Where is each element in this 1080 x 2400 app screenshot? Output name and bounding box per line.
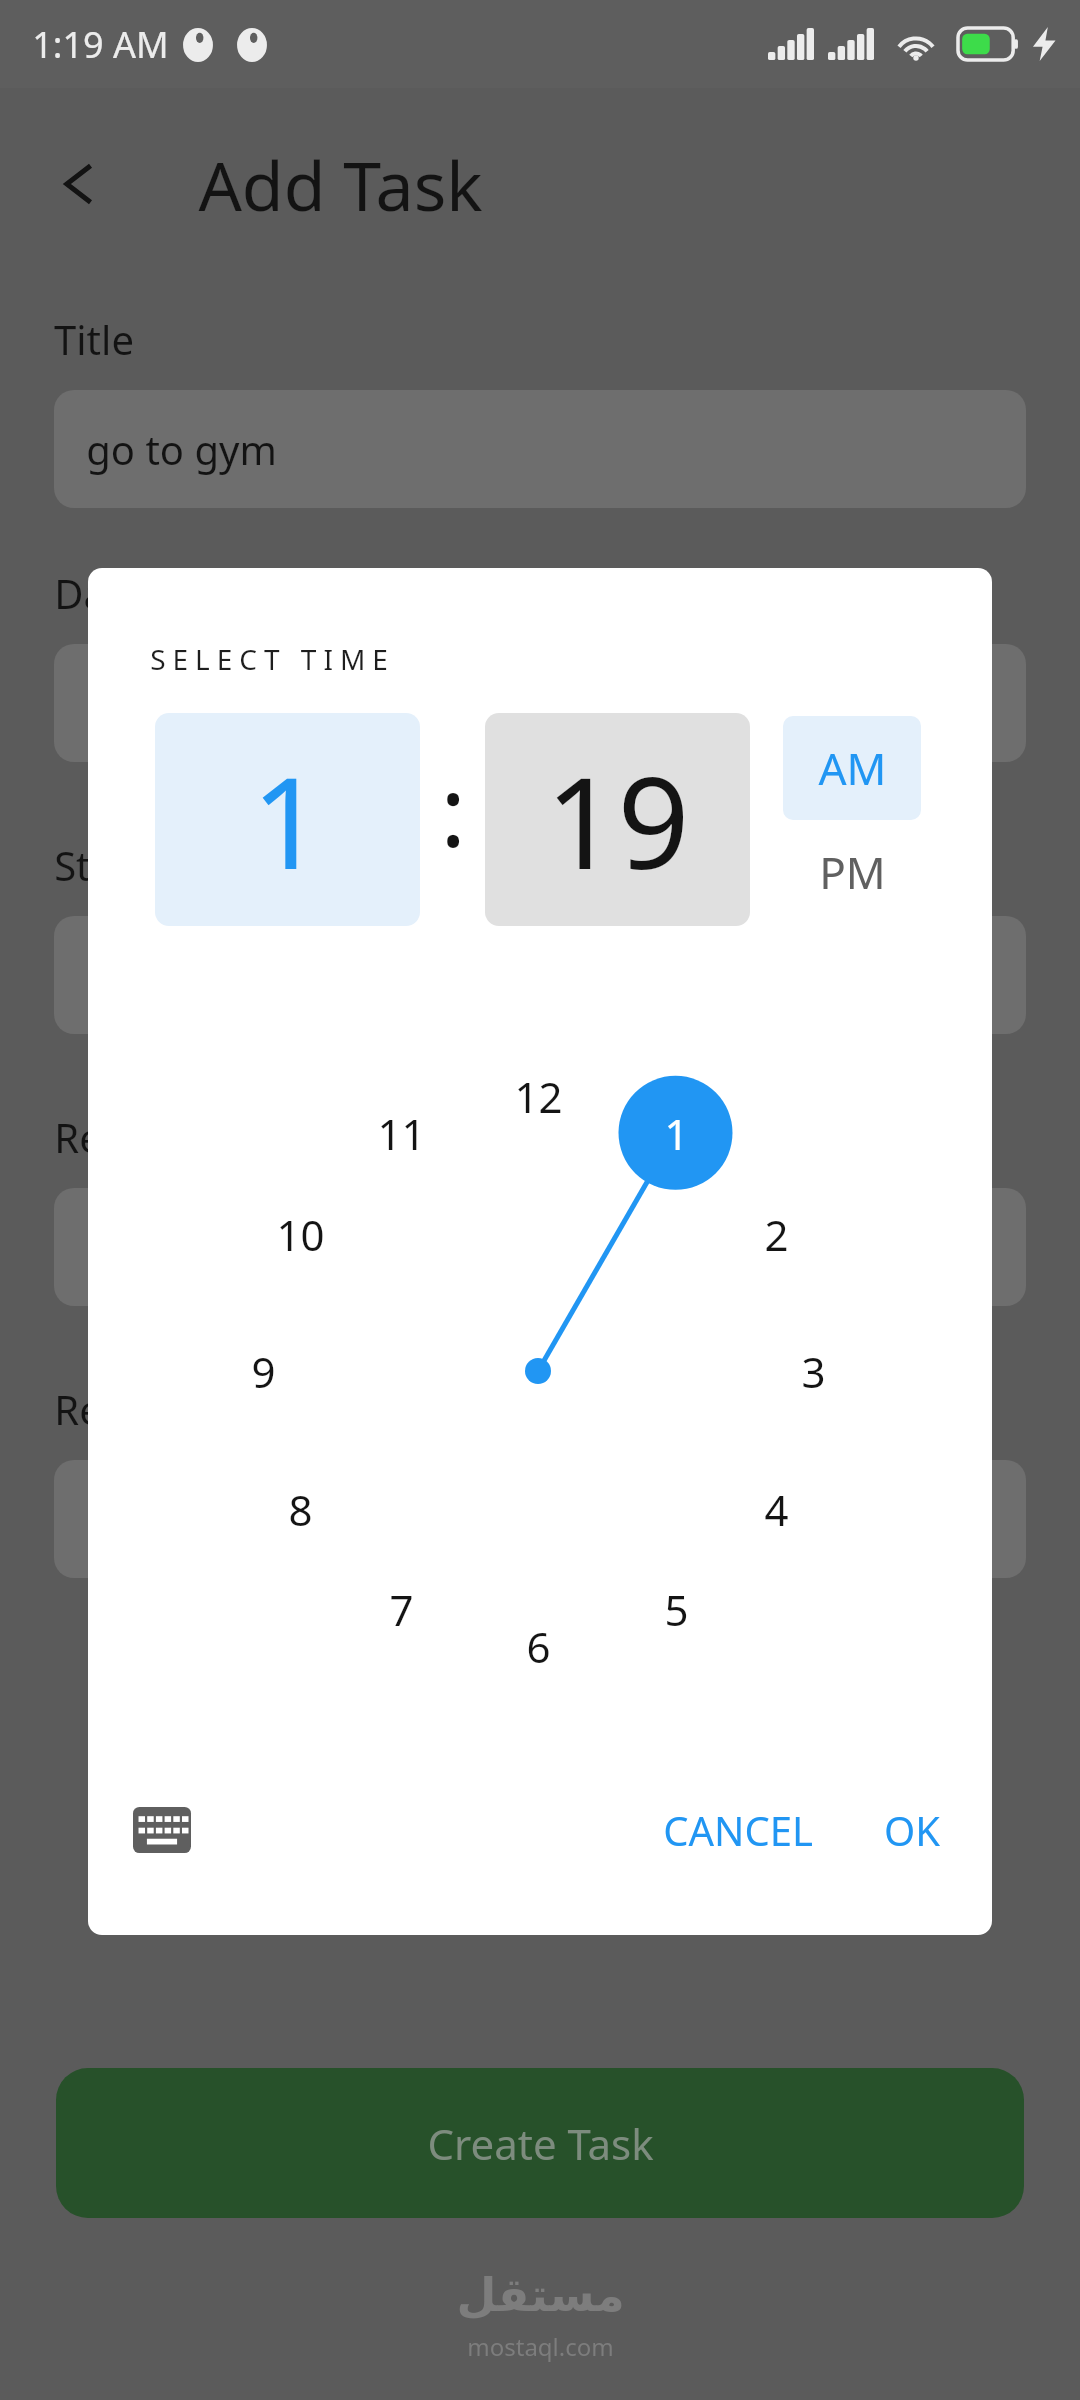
button[interactable]: 5 (626, 1559, 726, 1659)
staticText: PM (819, 842, 886, 902)
staticText: 12 (514, 1068, 563, 1125)
staticText: Create Task (427, 2115, 654, 2172)
staticText: Title (54, 312, 134, 366)
button[interactable]: 19 (485, 713, 750, 926)
staticText: 8 (288, 1481, 313, 1538)
staticText: AM (818, 738, 887, 798)
staticText: 1 (664, 1105, 689, 1162)
button[interactable] (54, 1460, 1026, 1578)
staticText: 10 (276, 1206, 325, 1263)
button[interactable]: 10 (250, 1184, 350, 1284)
button[interactable] (54, 916, 1026, 1034)
staticText: Date (54, 566, 143, 620)
staticText: 7 (389, 1581, 414, 1638)
staticText: 6 (526, 1618, 551, 1675)
staticText: SELECT TIME (150, 640, 395, 678)
button[interactable]: OK (856, 1786, 968, 1874)
staticText: 4 (764, 1481, 789, 1538)
staticText: Add Task (198, 138, 483, 231)
staticText: مستقل (456, 2268, 625, 2322)
button[interactable]: CANCEL (634, 1786, 842, 1874)
button[interactable]: 12 (488, 1046, 588, 1146)
button[interactable]: go to gym (54, 390, 1026, 508)
button[interactable]: 6 (488, 1596, 588, 1696)
button[interactable] (54, 644, 1026, 762)
button[interactable]: 8 (250, 1459, 350, 1559)
button[interactable]: 1 (155, 713, 420, 926)
staticText: Remind (54, 1110, 199, 1164)
staticText: go to gym (86, 422, 277, 476)
button[interactable]: 1 (626, 1083, 726, 1183)
staticText: OK (884, 1803, 940, 1857)
staticText: 1 (251, 734, 324, 906)
button[interactable]: Create Task (56, 2068, 1024, 2218)
staticText: 19 (545, 734, 690, 906)
button[interactable]: 4 (726, 1459, 826, 1559)
staticText: 5 (664, 1581, 689, 1638)
button[interactable]: 7 (351, 1559, 451, 1659)
staticText: 2 (764, 1206, 789, 1263)
staticText: Repeat (54, 1382, 186, 1436)
button[interactable]: 11 (351, 1083, 451, 1183)
staticText: mostaql.com (467, 2330, 614, 2363)
staticText: Start Time (54, 838, 247, 892)
button[interactable] (54, 1188, 1026, 1306)
staticText: 11 (377, 1105, 426, 1162)
button[interactable]: 2 (726, 1184, 826, 1284)
button[interactable]: Back (38, 146, 114, 222)
button[interactable]: PM (783, 820, 921, 924)
staticText: : (440, 744, 466, 875)
staticText: 3 (801, 1343, 826, 1400)
button[interactable]: Switch to keyboard input (118, 1786, 206, 1874)
button[interactable]: 9 (213, 1321, 313, 1421)
staticText: 9 (251, 1343, 276, 1400)
button[interactable]: AM (783, 716, 921, 820)
staticText: CANCEL (663, 1803, 813, 1857)
button[interactable]: 3 (763, 1321, 863, 1421)
staticText: 1:19 AM (32, 20, 169, 69)
